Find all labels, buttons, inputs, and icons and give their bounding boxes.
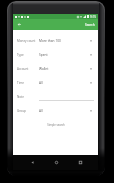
button[interactable]: Type <box>13 48 98 62</box>
button[interactable]: Money count <box>13 34 98 48</box>
staticText: Wallet <box>39 67 49 71</box>
staticText: More than 100 <box>39 39 61 43</box>
staticText: All <box>39 109 43 113</box>
button[interactable]: Group <box>13 104 98 118</box>
staticText: Simple search <box>47 123 65 127</box>
button[interactable]: Account <box>13 62 98 76</box>
button[interactable]: Simple search <box>13 121 98 129</box>
button[interactable]: Search <box>82 21 98 29</box>
staticText: Type <box>17 53 24 57</box>
staticText: Note <box>17 95 24 99</box>
staticText: Money count <box>17 39 36 43</box>
staticText: Account <box>17 67 29 71</box>
staticText: Spent <box>39 53 48 57</box>
staticText: Group <box>17 109 26 113</box>
button[interactable]: Time <box>13 76 98 90</box>
button[interactable]: Back <box>14 19 25 30</box>
button[interactable]: Home <box>51 157 62 168</box>
button[interactable]: Back <box>27 157 38 168</box>
staticText: 9:15 <box>90 15 96 19</box>
staticText: All <box>39 81 43 85</box>
button[interactable]: Note <box>13 90 98 104</box>
button[interactable]: Recent apps <box>75 157 86 168</box>
staticText: Time <box>17 81 24 85</box>
staticText: Search <box>85 23 95 27</box>
